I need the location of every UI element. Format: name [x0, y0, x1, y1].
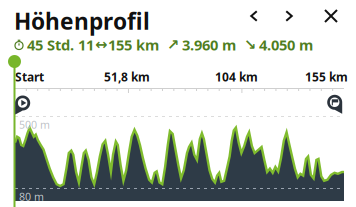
staticText: ↗: [167, 36, 179, 53]
staticText: 45 Std. 11: [27, 35, 94, 54]
staticText: 104 km: [215, 69, 258, 85]
button[interactable]: Previous: [240, 2, 268, 30]
staticText: 155 km: [305, 69, 348, 85]
staticText: 51,8 km: [104, 69, 150, 85]
staticText: 80 m: [19, 189, 44, 204]
staticText: 500 m: [19, 117, 50, 132]
staticText: 3.960 m: [182, 35, 236, 54]
staticText: 4.050 m: [259, 35, 313, 54]
staticText: 155 km: [108, 35, 159, 54]
button[interactable]: Close: [317, 2, 345, 30]
staticText: Start: [15, 69, 44, 85]
staticText: Höhenprofil: [14, 6, 150, 36]
staticText: ↘: [244, 36, 256, 53]
button[interactable]: Next: [275, 2, 303, 30]
staticText: ↔: [95, 36, 107, 53]
